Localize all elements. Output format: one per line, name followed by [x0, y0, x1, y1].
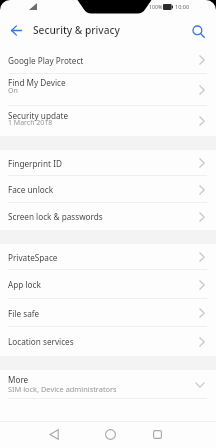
button[interactable]: App lock: [0, 270, 216, 299]
button[interactable]: File safe: [0, 299, 216, 327]
staticText: Face unlock: [8, 184, 54, 195]
button[interactable]: Find My Device: [0, 74, 216, 106]
staticText: 10:00: [175, 3, 190, 10]
staticText: File safe: [8, 308, 40, 319]
staticText: 100%: [149, 3, 163, 10]
button[interactable]: Fingerprint ID: [0, 150, 216, 176]
button[interactable]: [4, 18, 28, 42]
staticText: Google Play Protect: [8, 55, 84, 66]
staticText: Security & privacy: [33, 23, 120, 37]
button[interactable]: More: [0, 370, 216, 399]
staticText: Find My Device: [8, 77, 66, 88]
staticText: SIM lock, Device administrators: [8, 384, 117, 394]
button[interactable]: [43, 423, 65, 445]
button[interactable]: Face unlock: [0, 176, 216, 203]
staticText: PrivateSpace: [8, 252, 58, 263]
button[interactable]: Screen lock & passwords: [0, 203, 216, 230]
staticText: 1 March 2018: [8, 118, 53, 128]
button[interactable]: Security update: [0, 106, 216, 136]
staticText: Fingerprint ID: [8, 158, 62, 169]
button[interactable]: [186, 19, 210, 43]
staticText: Location services: [8, 336, 74, 347]
button[interactable]: Google Play Protect: [0, 46, 216, 74]
staticText: App lock: [8, 279, 41, 290]
staticText: More: [8, 374, 29, 385]
staticText: On: [8, 86, 18, 96]
staticText: Security update: [8, 110, 69, 121]
button[interactable]: Location services: [0, 327, 216, 356]
staticText: Screen lock & passwords: [8, 211, 103, 222]
button[interactable]: [146, 423, 168, 445]
button[interactable]: PrivateSpace: [0, 244, 216, 270]
button[interactable]: [99, 423, 121, 445]
